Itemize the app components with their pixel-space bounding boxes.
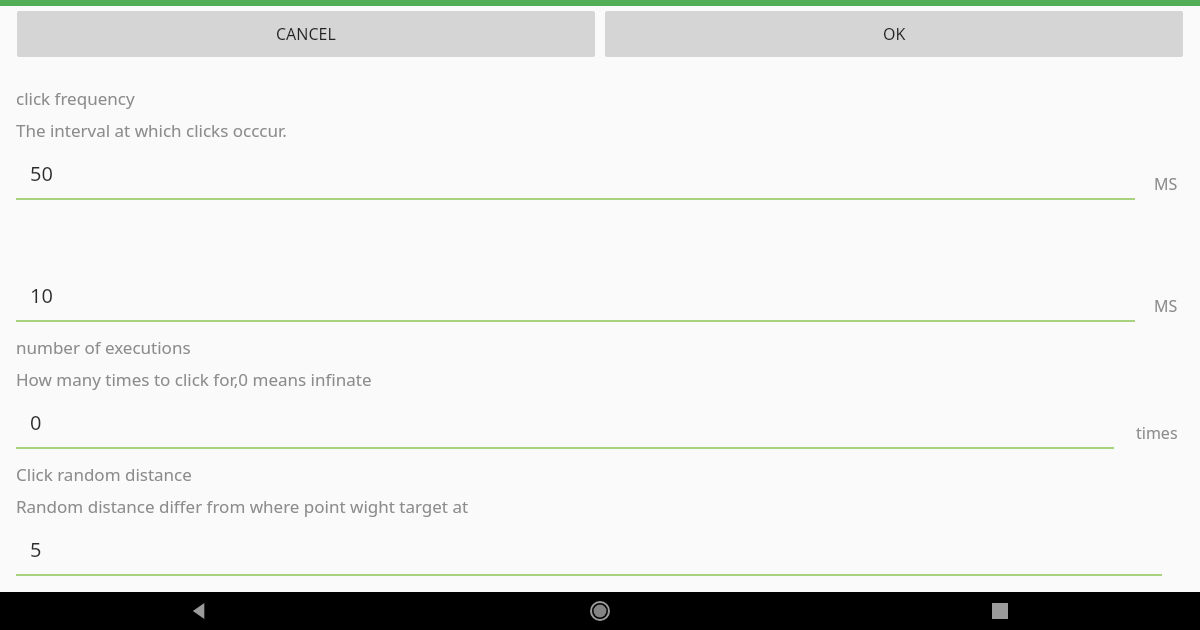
- staticText: 50: [30, 160, 53, 187]
- button[interactable]: 50: [0, 154, 1200, 200]
- staticText: 0: [30, 409, 42, 436]
- button[interactable]: OK: [605, 11, 1183, 57]
- staticText: 10: [30, 282, 53, 309]
- staticText: Random distance differ from where point …: [16, 495, 469, 518]
- staticText: CANCEL: [276, 23, 336, 45]
- button[interactable]: Home: [581, 592, 619, 630]
- button[interactable]: CANCEL: [17, 11, 595, 57]
- button[interactable]: Back: [181, 592, 219, 630]
- staticText: Click random distance: [16, 463, 192, 486]
- button[interactable]: 0: [0, 403, 1200, 449]
- button[interactable]: 5: [0, 530, 1200, 576]
- staticText: MS: [1154, 173, 1178, 195]
- staticText: OK: [883, 23, 906, 45]
- staticText: number of executions: [16, 336, 191, 359]
- staticText: MS: [1154, 295, 1178, 317]
- staticText: The interval at which clicks occcur.: [16, 119, 287, 142]
- button[interactable]: Recent apps: [981, 592, 1019, 630]
- staticText: times: [1136, 422, 1178, 444]
- button[interactable]: 10: [0, 276, 1200, 322]
- staticText: How many times to click for,0 means infi…: [16, 368, 372, 391]
- staticText: click frequency: [16, 87, 135, 110]
- staticText: 5: [30, 536, 42, 563]
